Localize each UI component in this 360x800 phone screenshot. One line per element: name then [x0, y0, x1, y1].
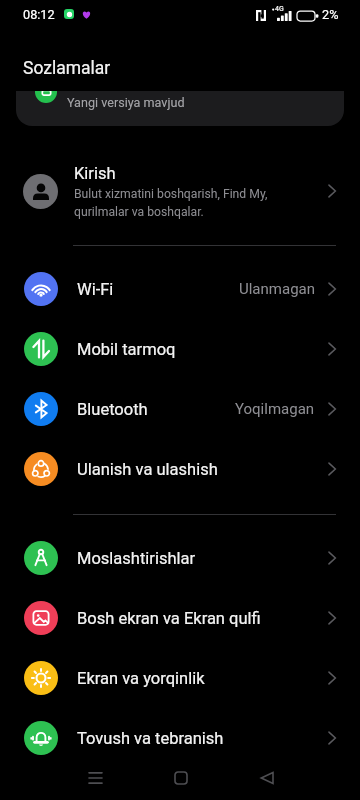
staticText: Ulanish va ulashish — [77, 460, 328, 479]
button[interactable]: Recent apps — [71, 756, 119, 800]
button[interactable]: Kirish — [0, 156, 360, 226]
staticText: Kirish — [74, 164, 116, 183]
staticText: Sozlamalar — [23, 58, 111, 79]
staticText: Bulut xizmatini boshqarish, Find My, qur… — [74, 187, 268, 219]
staticText: Bluetooth — [77, 400, 235, 419]
button[interactable]: Mobil tarmoq — [0, 319, 360, 379]
button[interactable]: Moslashtirishlar — [0, 528, 360, 588]
button[interactable]: Ulanish va ulashish — [0, 439, 360, 499]
staticText: Tovush va tebranish — [77, 729, 328, 748]
button[interactable]: Tovush va tebranish — [0, 708, 360, 768]
button[interactable]: Bluetooth — [0, 379, 360, 439]
staticText: Bosh ekran va Ekran qulfi — [77, 609, 328, 628]
staticText: 2% — [322, 7, 339, 22]
staticText: Ulanmagan — [239, 280, 315, 298]
staticText: Wi-Fi — [77, 280, 239, 299]
staticText: Mobil tarmoq — [77, 340, 328, 359]
staticText: 4G — [275, 5, 284, 13]
button[interactable]: Yangi versiya mavjud — [16, 91, 344, 126]
staticText: Yoqilmagan — [235, 400, 315, 418]
staticText: Ekran va yorqinlik — [77, 669, 328, 688]
button[interactable]: Bosh ekran va Ekran qulfi — [0, 588, 360, 648]
button[interactable]: Back — [243, 756, 291, 800]
button[interactable]: Home — [157, 756, 205, 800]
staticText: Yangi versiya mavjud — [67, 95, 185, 110]
button[interactable]: Ekran va yorqinlik — [0, 648, 360, 708]
button[interactable]: Wi-Fi — [0, 259, 360, 319]
staticText: 08:12 — [23, 7, 55, 22]
staticText: Moslashtirishlar — [77, 549, 328, 568]
